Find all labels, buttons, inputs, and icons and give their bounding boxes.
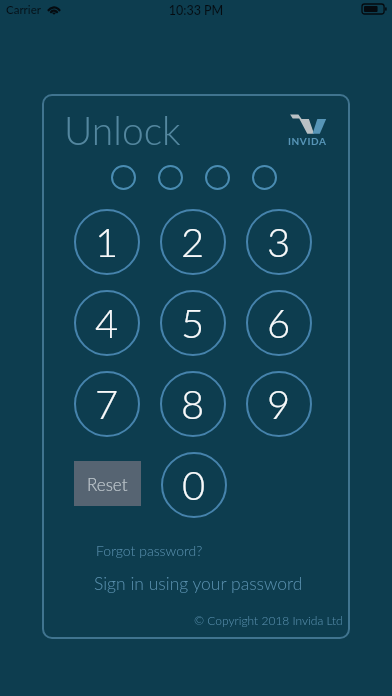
staticText: 1 xyxy=(95,218,119,266)
other: Battery level xyxy=(362,4,386,14)
button[interactable]: 1 xyxy=(74,209,140,275)
staticText: 10:33 PM xyxy=(0,3,392,18)
staticText: © Copyright 2018 Invida Ltd xyxy=(194,613,344,627)
button[interactable]: 8 xyxy=(160,371,226,437)
button[interactable]: Reset xyxy=(74,461,141,506)
other: Wi-Fi signal xyxy=(47,4,61,15)
staticText: 6 xyxy=(267,299,291,347)
staticText: Reset xyxy=(87,474,128,494)
staticText: 3 xyxy=(267,218,291,266)
button[interactable]: 2 xyxy=(160,209,226,275)
staticText: 2 xyxy=(181,218,205,266)
staticText: 8 xyxy=(181,380,205,428)
button[interactable]: 6 xyxy=(246,290,312,356)
staticText: Carrier xyxy=(6,3,41,17)
button[interactable]: 0 xyxy=(161,452,227,518)
button[interactable]: 7 xyxy=(74,371,140,437)
staticText: 7 xyxy=(95,380,119,428)
staticText: 0 xyxy=(182,461,206,509)
button[interactable]: Forgot password? xyxy=(96,542,203,559)
staticText: 4 xyxy=(95,299,119,347)
button[interactable]: Sign in using your password xyxy=(94,573,303,594)
staticText: Unlock xyxy=(64,107,181,154)
button[interactable]: 5 xyxy=(160,290,226,356)
button[interactable]: 9 xyxy=(246,371,312,437)
staticText: 9 xyxy=(267,380,291,428)
staticText: INVIDA xyxy=(288,135,327,147)
button[interactable]: 3 xyxy=(246,209,312,275)
button[interactable]: 4 xyxy=(74,290,140,356)
staticText: 5 xyxy=(181,299,205,347)
